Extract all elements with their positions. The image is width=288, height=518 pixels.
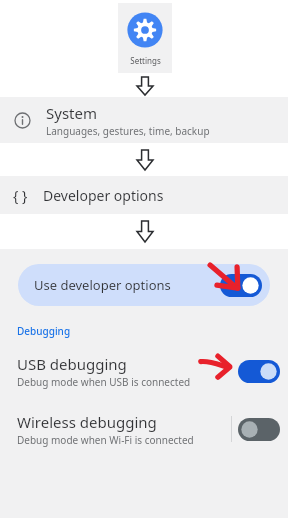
staticText: Debug mode when Wi-Fi is connected xyxy=(17,433,194,447)
staticText: Debugging xyxy=(17,324,71,338)
staticText: USB debugging xyxy=(17,354,127,374)
staticText: Settings xyxy=(130,55,161,66)
button[interactable]: USB debugging toggle, on xyxy=(238,360,280,383)
button[interactable]: Use developer options toggle, on xyxy=(220,274,262,297)
button[interactable]: Settings xyxy=(118,3,172,73)
staticText: Wireless debugging xyxy=(17,412,157,432)
staticText: { } xyxy=(13,186,28,205)
button[interactable]: Use developer options xyxy=(18,264,270,306)
button[interactable]: System xyxy=(0,97,288,143)
staticText: Developer options xyxy=(43,186,164,205)
button[interactable]: Wireless debugging xyxy=(0,408,288,450)
button[interactable]: Wireless debugging toggle, off xyxy=(238,418,280,441)
button[interactable]: USB debugging xyxy=(0,350,288,392)
staticText: Use developer options xyxy=(34,276,171,294)
button[interactable]: { } xyxy=(0,176,288,214)
staticText: System xyxy=(46,103,97,123)
staticText: Languages, gestures, time, backup xyxy=(46,124,210,138)
staticText: Debug mode when USB is connected xyxy=(17,375,191,389)
